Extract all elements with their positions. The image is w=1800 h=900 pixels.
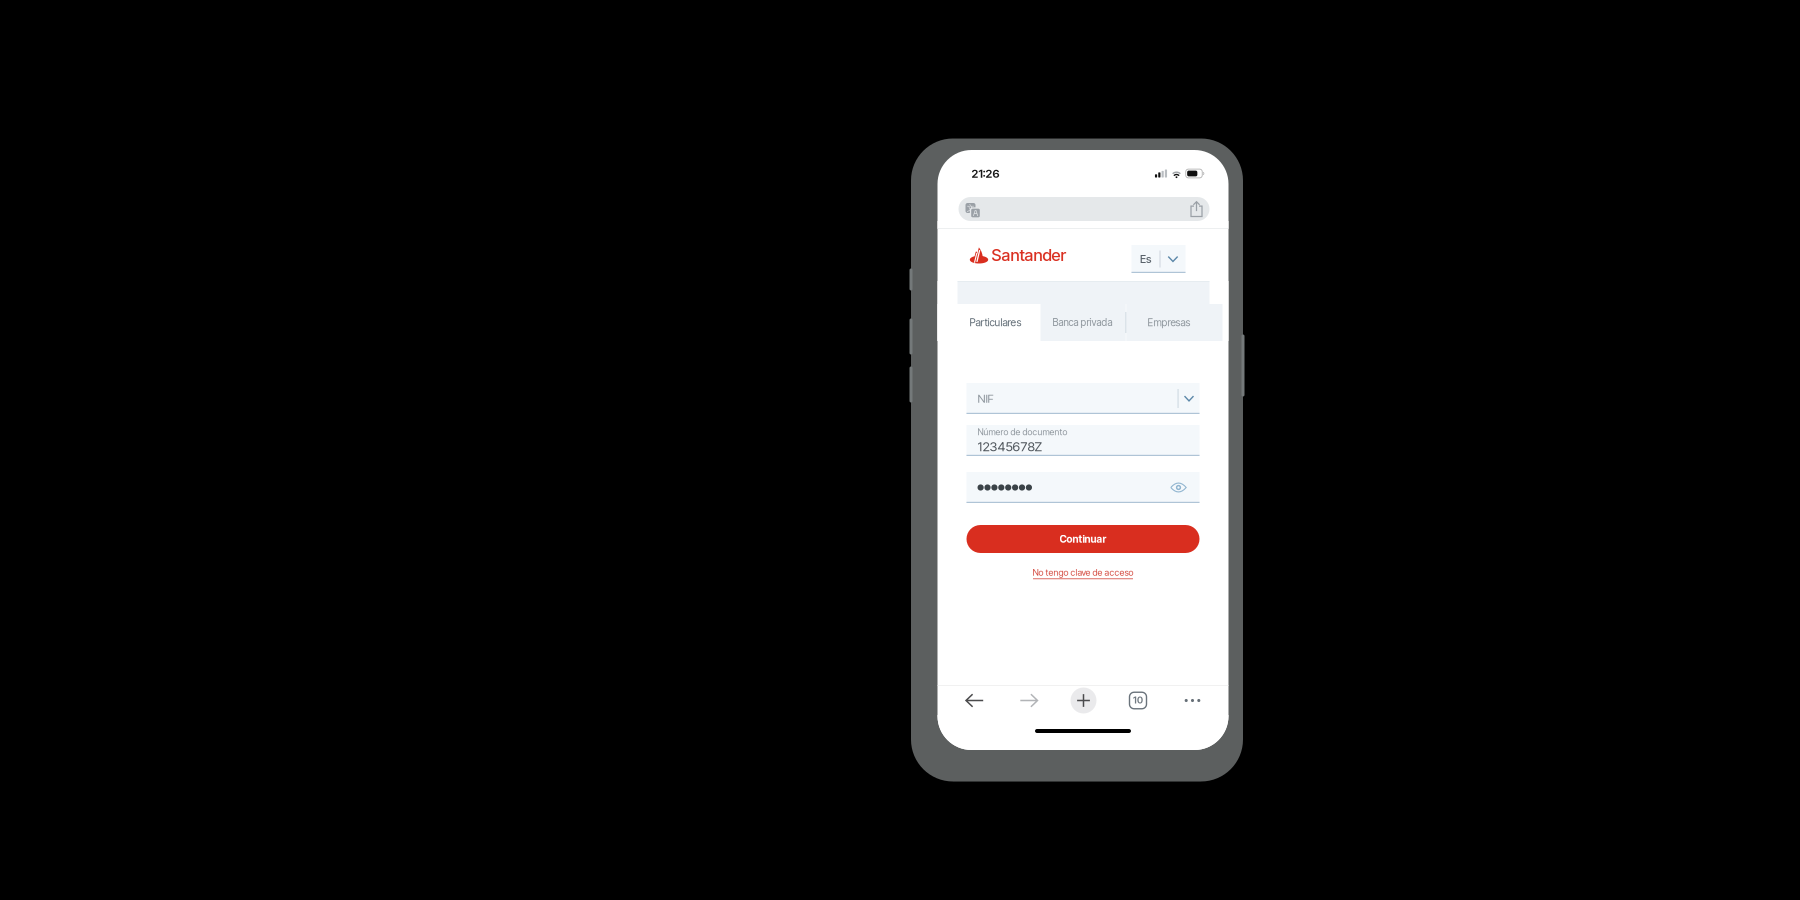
staticText: 21:26 bbox=[971, 167, 999, 180]
staticText: Santander bbox=[991, 245, 1066, 265]
staticText: 10 bbox=[1133, 694, 1143, 706]
staticText: Es bbox=[1140, 252, 1151, 266]
button[interactable]: More bbox=[1175, 680, 1209, 720]
button[interactable]: NIF bbox=[966, 383, 1199, 414]
staticText: No tengo clave de acceso bbox=[1032, 567, 1133, 578]
staticText: A bbox=[973, 208, 978, 218]
button[interactable]: Translate bbox=[958, 197, 982, 221]
button[interactable]: Forward bbox=[1012, 680, 1046, 720]
staticText: NIF bbox=[977, 392, 993, 405]
button[interactable]: New tab bbox=[1066, 680, 1100, 720]
button[interactable]: Tabs bbox=[1121, 680, 1155, 720]
staticText: 12345678Z bbox=[977, 438, 1042, 454]
staticText: 文 bbox=[966, 203, 974, 213]
button[interactable]: Banca privada bbox=[1040, 304, 1125, 341]
staticText: Continuar bbox=[1059, 533, 1106, 545]
button[interactable]: Es bbox=[1131, 241, 1185, 269]
button[interactable]: Show password bbox=[1166, 475, 1190, 499]
button[interactable]: Particulares bbox=[937, 304, 1040, 341]
staticText: Número de documento bbox=[977, 427, 1067, 437]
staticText: Particulares bbox=[969, 316, 1021, 329]
button[interactable]: No tengo clave de acceso bbox=[1032, 567, 1133, 579]
button[interactable]: Share bbox=[1185, 197, 1207, 221]
staticText: Banca privada bbox=[1052, 316, 1112, 328]
button[interactable]: Empresas bbox=[1126, 304, 1222, 341]
button[interactable]: Back bbox=[957, 680, 991, 720]
button[interactable]: Continuar bbox=[966, 525, 1199, 553]
staticText: Empresas bbox=[1147, 316, 1190, 329]
